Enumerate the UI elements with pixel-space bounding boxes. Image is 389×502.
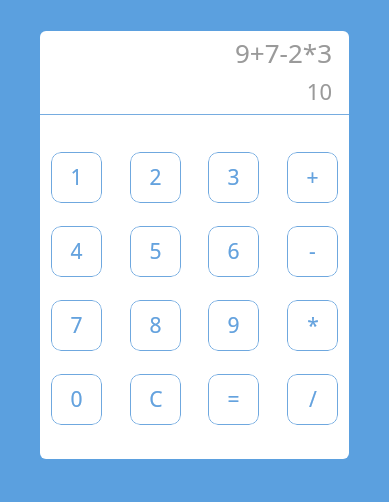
button[interactable]: 1	[51, 152, 102, 203]
button[interactable]: =	[208, 374, 259, 425]
staticText: -	[309, 237, 316, 266]
staticText: 5	[149, 237, 162, 266]
staticText: 7	[70, 311, 83, 340]
button[interactable]: +	[287, 152, 338, 203]
button[interactable]: 6	[208, 226, 259, 277]
button[interactable]: 0	[51, 374, 102, 425]
staticText: 4	[70, 237, 83, 266]
button[interactable]: C	[130, 374, 181, 425]
button[interactable]: 9	[208, 300, 259, 351]
staticText: +	[306, 163, 319, 192]
button[interactable]: /	[287, 374, 338, 425]
staticText: 0	[70, 385, 83, 414]
staticText: 9	[227, 311, 240, 340]
button[interactable]: 5	[130, 226, 181, 277]
staticText: =	[227, 385, 240, 414]
staticText: 2	[149, 163, 162, 192]
button[interactable]: 7	[51, 300, 102, 351]
staticText: 3	[227, 163, 240, 192]
staticText: 9+7-2*3	[54, 35, 332, 70]
button[interactable]: 8	[130, 300, 181, 351]
staticText: 8	[149, 311, 162, 340]
button[interactable]: 3	[208, 152, 259, 203]
button[interactable]: 4	[51, 226, 102, 277]
button[interactable]: -	[287, 226, 338, 277]
staticText: 6	[227, 237, 240, 266]
staticText: 10	[54, 76, 332, 106]
button[interactable]: *	[287, 300, 338, 351]
staticText: C	[149, 385, 163, 414]
staticText: /	[309, 385, 317, 414]
staticText: 1	[70, 163, 83, 192]
staticText: *	[307, 311, 319, 340]
button[interactable]: 2	[130, 152, 181, 203]
